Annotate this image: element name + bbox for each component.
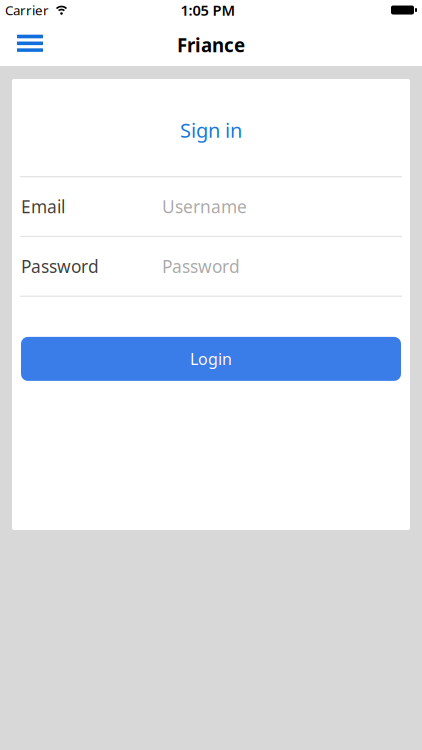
staticText: Email bbox=[21, 195, 65, 218]
staticText: Login bbox=[190, 348, 232, 369]
button[interactable]: Menu bbox=[0, 30, 43, 60]
staticText: Sign in bbox=[180, 117, 242, 143]
staticText: Password bbox=[162, 255, 240, 278]
staticText: Username bbox=[162, 195, 247, 218]
staticText: 1:05 PM bbox=[180, 0, 235, 20]
staticText: Friance bbox=[177, 33, 245, 57]
button[interactable]: Login bbox=[21, 337, 401, 381]
staticText: Password bbox=[21, 255, 99, 278]
staticText: Carrier bbox=[5, 1, 49, 19]
